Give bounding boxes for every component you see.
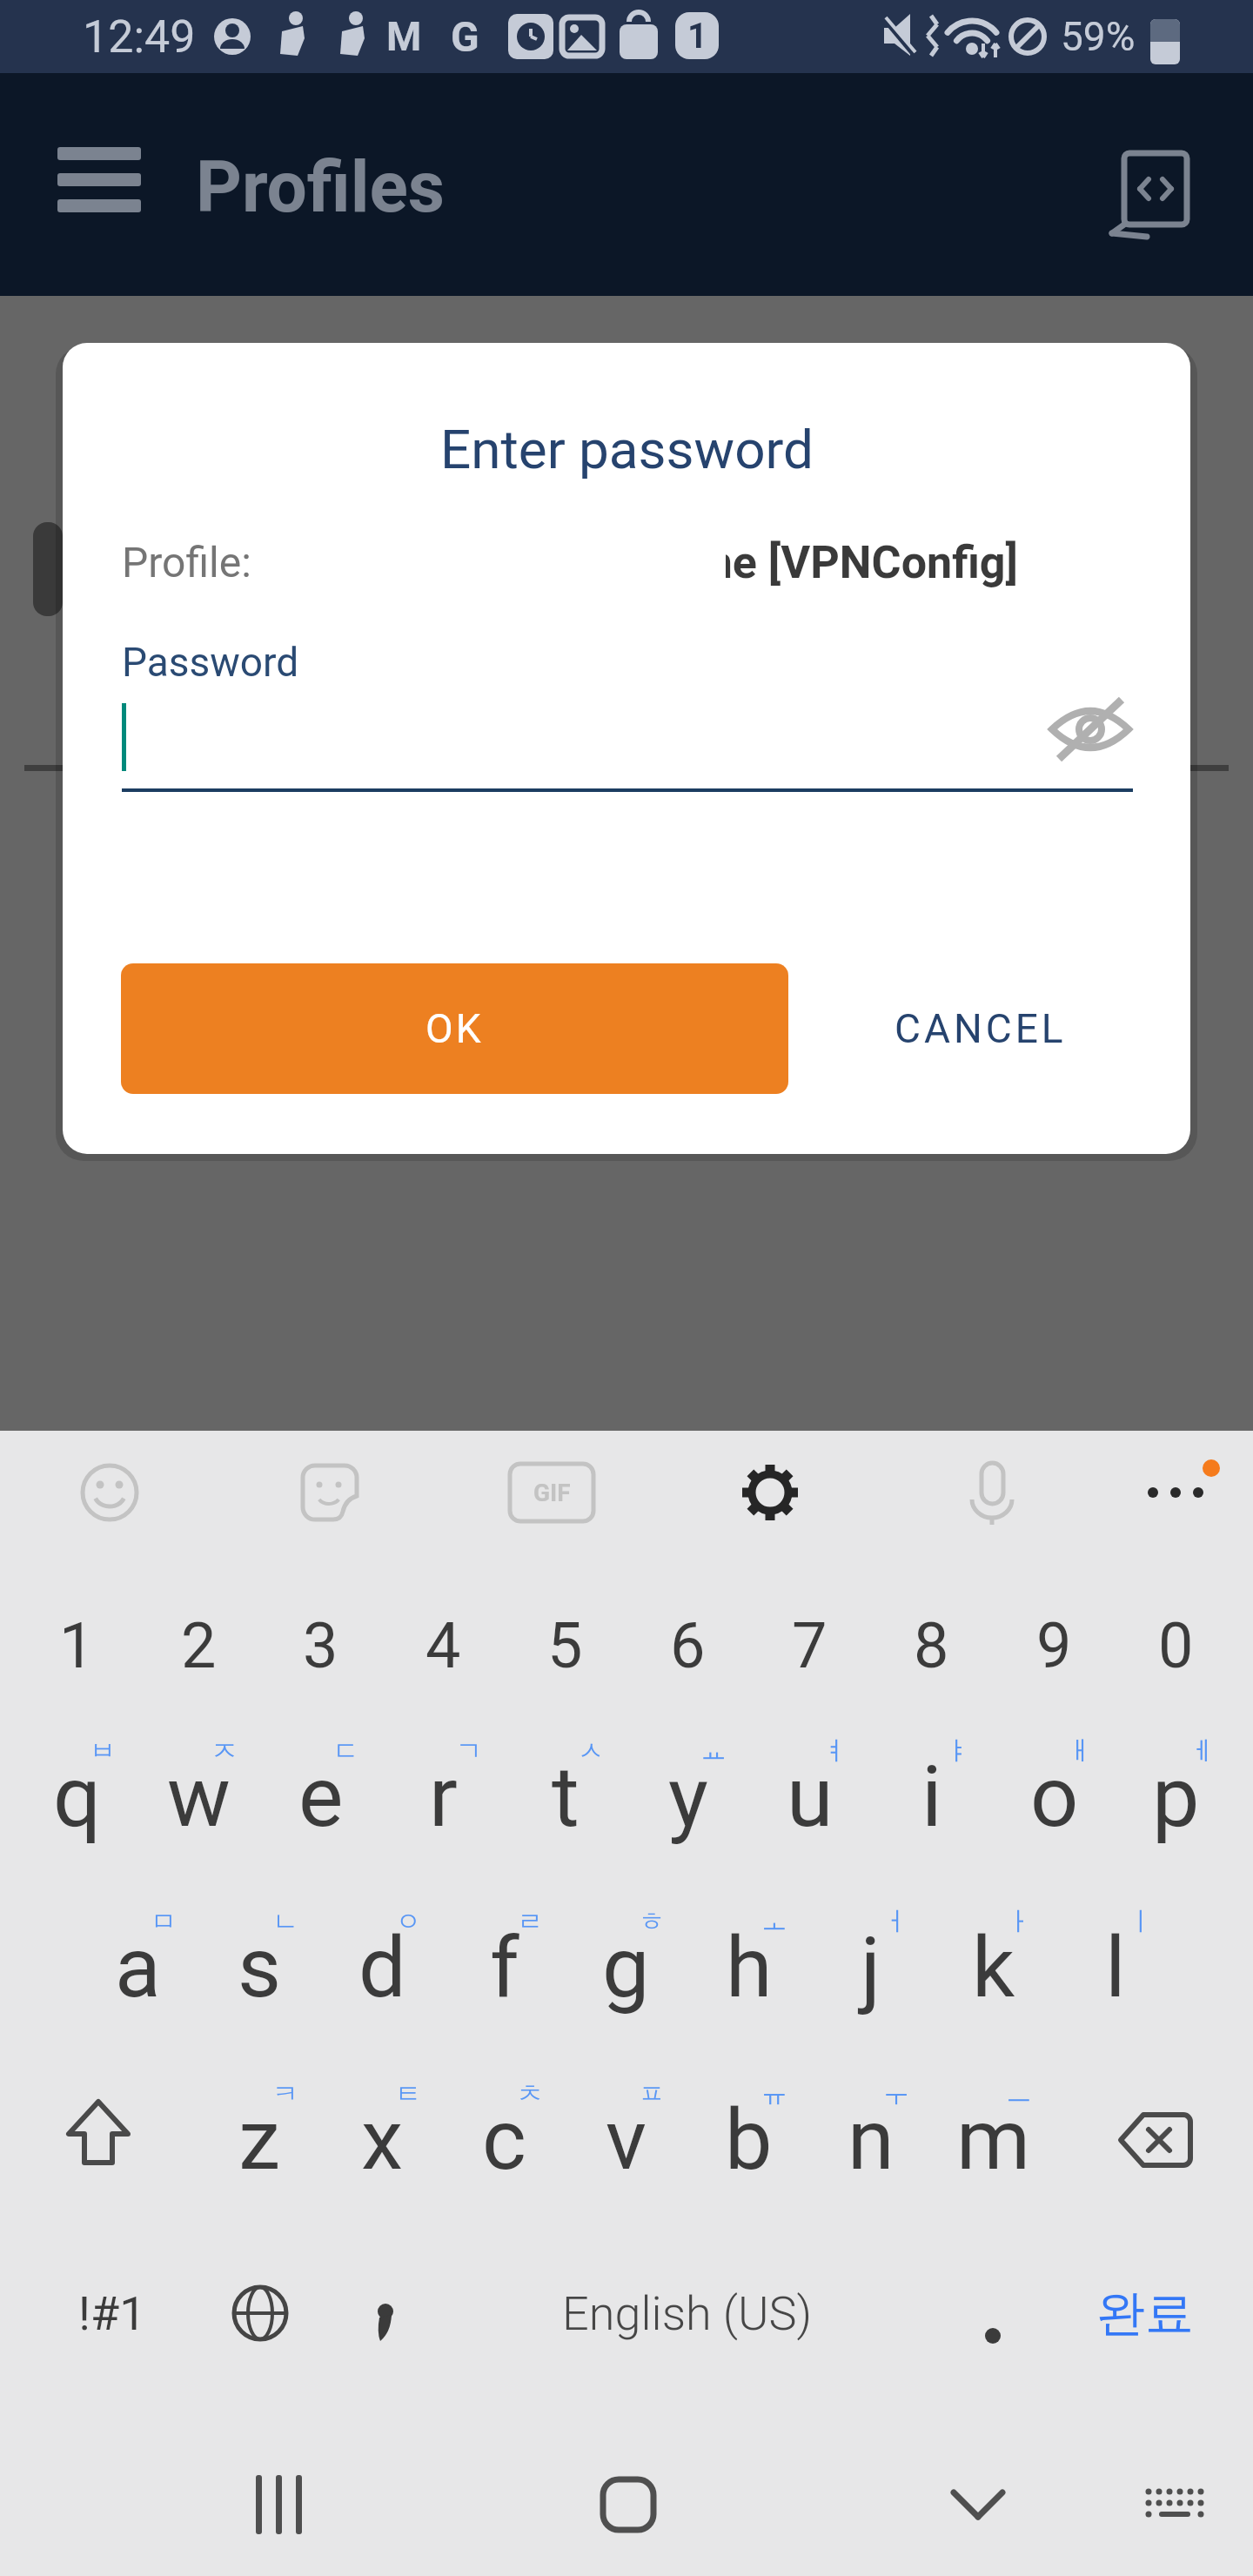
button[interactable]: OK [121, 963, 788, 1094]
staticText: d [358, 1918, 406, 2017]
staticText: ㅐ [1067, 1734, 1093, 1768]
staticText: g [602, 1918, 650, 2017]
staticText: 완료 [1096, 2283, 1194, 2345]
button[interactable]: n [809, 2076, 932, 2204]
staticText: G [451, 12, 479, 61]
staticText: 7 [792, 1609, 828, 1682]
button[interactable]: g [565, 1903, 687, 2032]
button[interactable]: 9 [993, 1588, 1116, 1703]
staticText: k [972, 1918, 1015, 2017]
button[interactable]: t [504, 1733, 626, 1862]
button[interactable]: x [321, 2076, 444, 2204]
staticText: j [861, 1918, 881, 2017]
button[interactable]: u [748, 1733, 871, 1862]
button[interactable]: q [16, 1733, 138, 1862]
button[interactable]: a [77, 1903, 199, 2032]
staticText: ㅑ [944, 1734, 970, 1768]
button[interactable]: h [687, 1903, 810, 2032]
staticText: p [1152, 1748, 1200, 1847]
button[interactable]: 7 [748, 1588, 871, 1703]
staticText: y [668, 1748, 708, 1847]
staticText: CANCEL [895, 1005, 1067, 1052]
button[interactable]: 0 [1115, 1588, 1237, 1703]
button[interactable]: m [932, 2076, 1055, 2204]
staticText: ㅍ [639, 2077, 665, 2110]
button[interactable]: f [443, 1903, 566, 2032]
staticText: 12:49 [83, 10, 196, 64]
staticText: ㅇ [395, 1905, 421, 1938]
button[interactable] [1093, 2079, 1218, 2201]
staticText: Password [122, 639, 299, 686]
button[interactable]: English (US) [487, 2252, 888, 2374]
button[interactable]: b [687, 2076, 810, 2204]
staticText: ㅓ [883, 1905, 909, 1938]
staticText: 0 [1158, 1609, 1194, 1682]
staticText: Profiles [196, 145, 445, 229]
button[interactable] [44, 136, 155, 233]
staticText: ㅔ [1189, 1734, 1215, 1768]
staticText: Phone [VPNConfig] [726, 536, 1018, 589]
staticText: ㅜ [883, 2077, 909, 2110]
button[interactable] [1103, 150, 1209, 245]
button[interactable]: c [443, 2076, 566, 2204]
staticText: ㄴ [272, 1905, 298, 1938]
staticText: w [167, 1748, 231, 1847]
button[interactable]: j [809, 1903, 932, 2032]
button[interactable]: 6 [626, 1588, 749, 1703]
button[interactable]: p [1115, 1733, 1237, 1862]
button[interactable] [37, 2079, 159, 2201]
staticText: 5 [547, 1609, 583, 1682]
button[interactable]: r [382, 1733, 505, 1862]
staticText: l [1105, 1918, 1126, 2017]
button[interactable]: 2 [137, 1588, 260, 1703]
button[interactable]: i [870, 1733, 993, 1862]
staticText: ㅠ [761, 2077, 787, 2110]
button[interactable]: y [626, 1733, 749, 1862]
staticText: OK [425, 1005, 484, 1052]
staticText: a [115, 1918, 161, 2017]
button[interactable]: d [321, 1903, 444, 2032]
button[interactable] [199, 2252, 321, 2374]
staticText: s [238, 1918, 282, 2017]
staticText: ㅈ [211, 1734, 238, 1768]
button[interactable]: 8 [870, 1588, 993, 1703]
button[interactable]: o [993, 1733, 1116, 1862]
button[interactable]: e [259, 1733, 382, 1862]
staticText: i [921, 1748, 942, 1847]
staticText: z [238, 2090, 281, 2190]
staticText: r [429, 1748, 458, 1847]
staticText: e [298, 1748, 344, 1847]
staticText: 9 [1036, 1609, 1072, 1682]
button[interactable]: z [198, 2076, 321, 2204]
button[interactable]: 4 [382, 1588, 505, 1703]
staticText: ㅊ [517, 2077, 543, 2110]
button[interactable]: 3 [259, 1588, 382, 1703]
button[interactable]: l [1054, 1903, 1176, 2032]
staticText: 6 [670, 1609, 706, 1682]
staticText: u [787, 1748, 834, 1847]
button[interactable]: CANCEL [837, 963, 1124, 1094]
button[interactable]: 완료 [1084, 2252, 1206, 2374]
staticText: q [53, 1748, 102, 1847]
button[interactable]: v [565, 2076, 687, 2204]
staticText: ㅏ [1006, 1905, 1032, 1938]
button[interactable]: 5 [504, 1588, 626, 1703]
staticText: n [848, 2090, 895, 2190]
staticText: ㅅ [578, 1734, 604, 1768]
staticText: 3 [303, 1609, 338, 1682]
button[interactable] [325, 2252, 446, 2374]
staticText: c [482, 2090, 526, 2190]
staticText: Enter password [440, 418, 814, 481]
button[interactable]: 1 [16, 1588, 138, 1703]
staticText: ㅣ [1128, 1905, 1154, 1938]
staticText: b [725, 2090, 773, 2190]
staticText: 1 [687, 16, 707, 57]
staticText: ㅋ [272, 2077, 298, 2110]
staticText: v [606, 2090, 647, 2190]
button[interactable] [932, 2252, 1054, 2374]
button[interactable]: k [932, 1903, 1055, 2032]
staticText: ㄹ [517, 1905, 543, 1938]
button[interactable]: w [137, 1733, 260, 1862]
staticText: Profile: [122, 538, 251, 587]
button[interactable]: s [198, 1903, 321, 2032]
